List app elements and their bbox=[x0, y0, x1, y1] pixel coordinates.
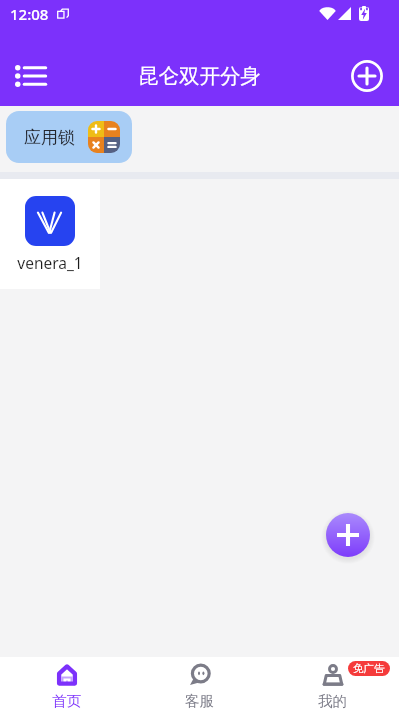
staticText: 12:08 bbox=[10, 4, 49, 24]
button[interactable]: Menu bbox=[9, 59, 52, 93]
button[interactable]: 应用锁 bbox=[6, 111, 132, 163]
button[interactable]: 客服 bbox=[133, 657, 266, 711]
staticText: 客服 bbox=[185, 692, 214, 710]
staticText: 首页 bbox=[52, 692, 81, 710]
staticText: 昆仑双开分身 bbox=[138, 63, 261, 89]
button[interactable]: 免广告 bbox=[266, 657, 399, 711]
staticText: 我的 bbox=[318, 692, 347, 710]
button[interactable]: 首页 bbox=[0, 657, 133, 711]
staticText: 应用锁 bbox=[24, 127, 75, 148]
button[interactable]: Add bbox=[348, 57, 385, 94]
button[interactable]: venera_1 bbox=[0, 179, 100, 289]
staticText: 免广告 bbox=[353, 662, 385, 675]
button[interactable]: Add app bbox=[326, 513, 370, 557]
staticText: venera_1 bbox=[17, 252, 83, 273]
